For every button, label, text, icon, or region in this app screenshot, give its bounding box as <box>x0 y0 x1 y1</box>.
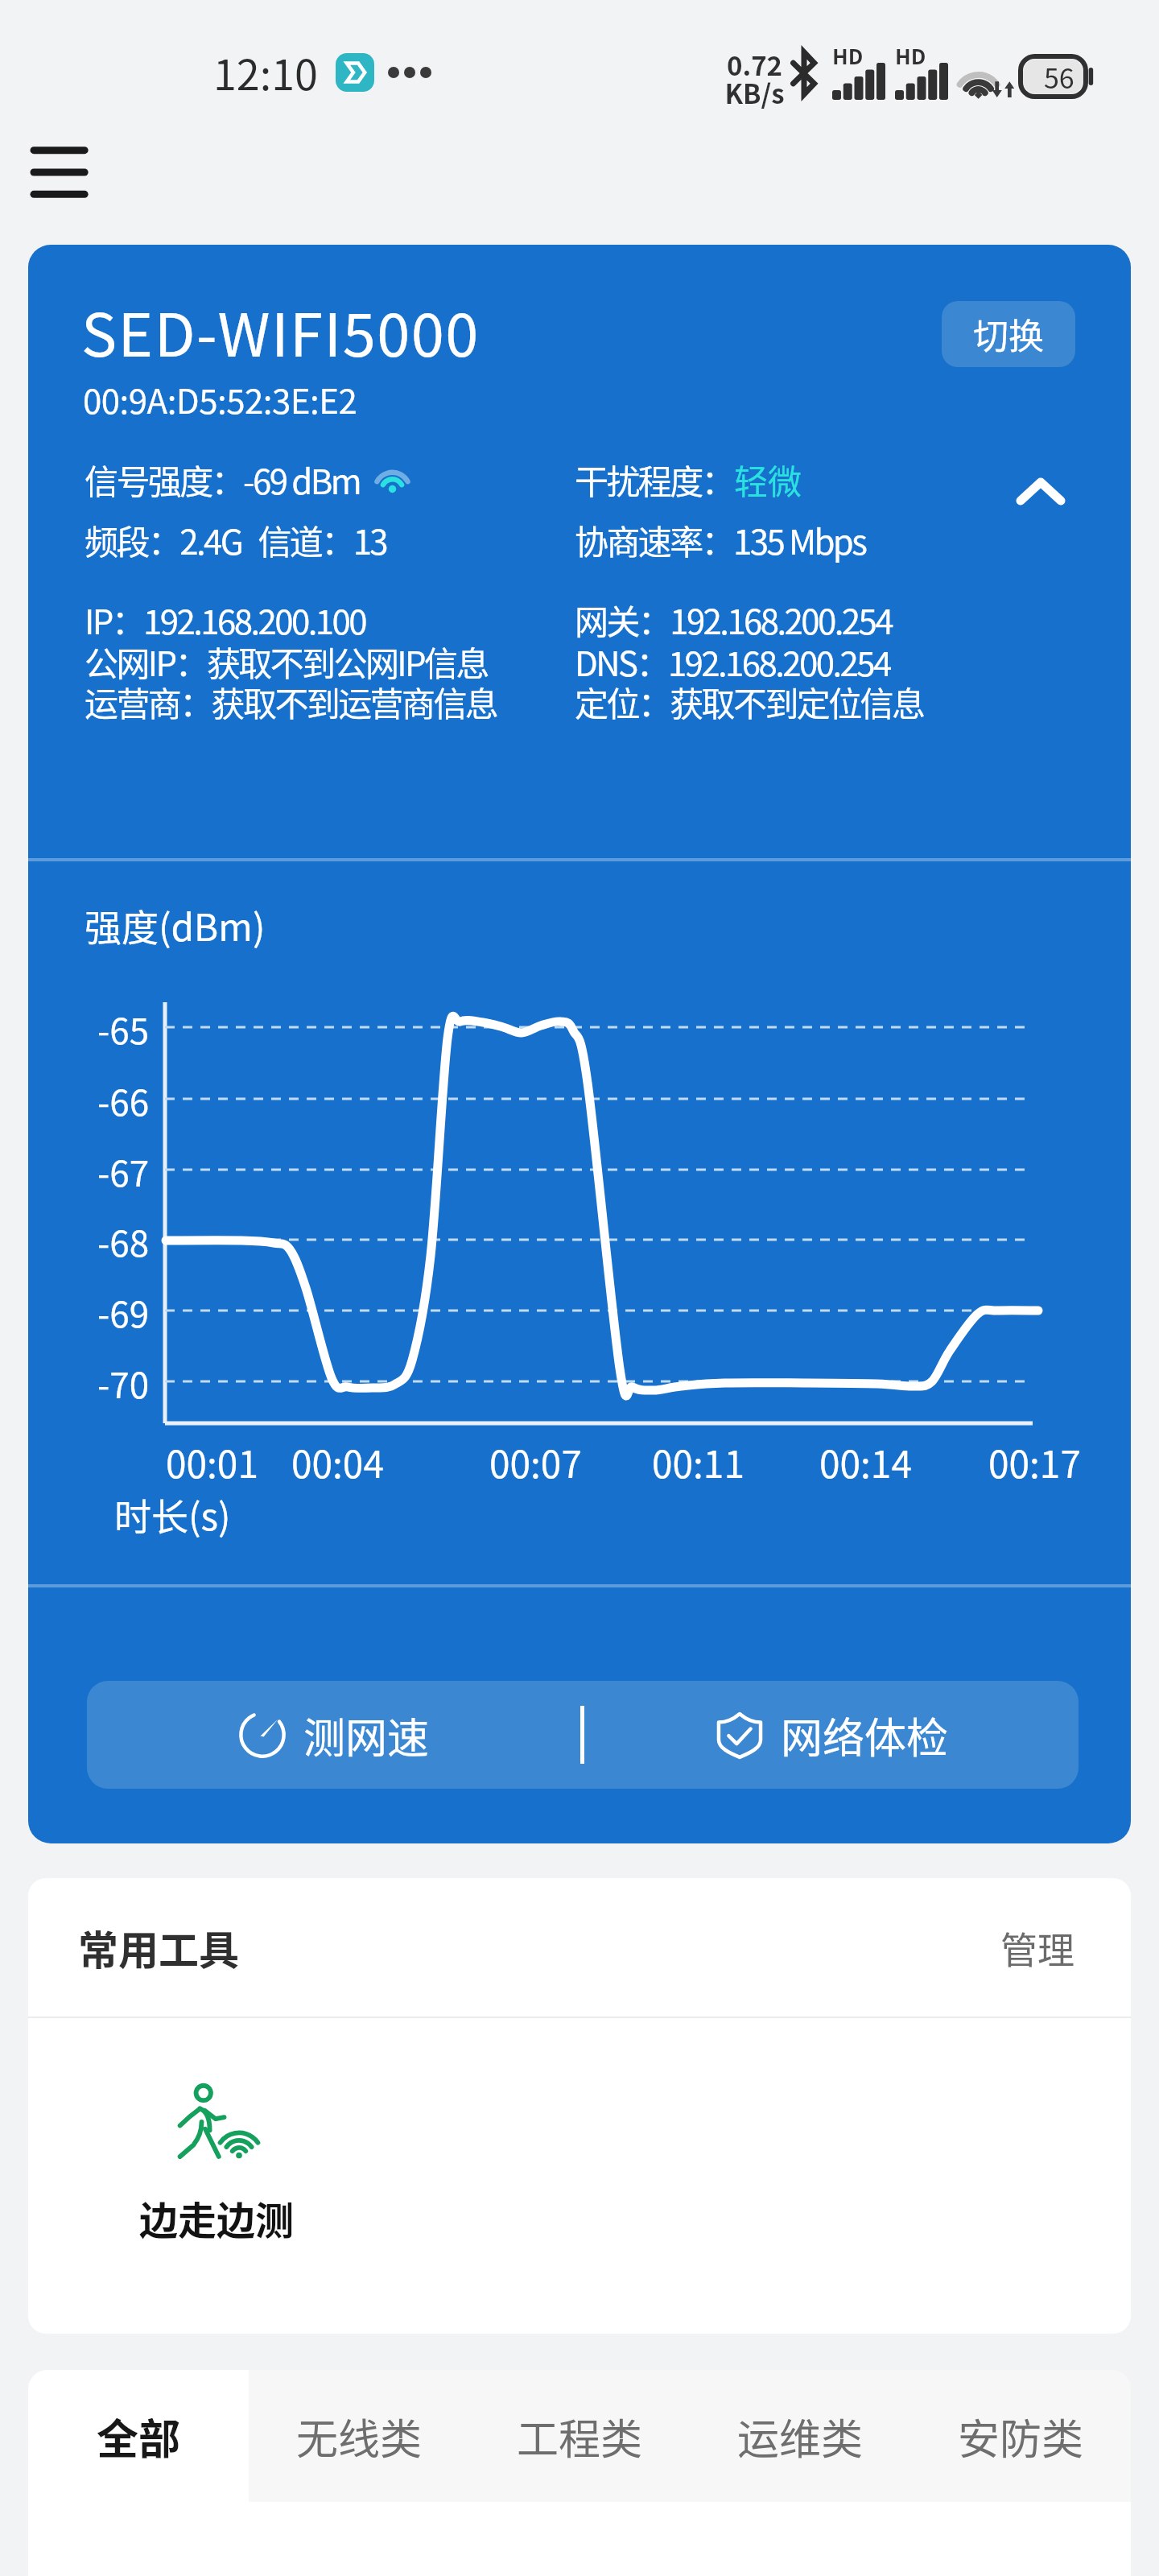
button[interactable]: 边走边测 <box>134 2075 299 2251</box>
staticText: 协商速率：135 Mbps <box>575 515 866 564</box>
staticText: HD <box>895 40 926 71</box>
button[interactable]: 安防类 <box>910 2370 1131 2502</box>
staticText: -70 <box>97 1357 150 1409</box>
staticText: 12:10 <box>213 42 318 102</box>
staticText: 00:14 <box>819 1435 912 1489</box>
button[interactable]: 管理 <box>994 1914 1081 1981</box>
staticText: -68 <box>97 1216 150 1267</box>
staticText: 切换 <box>973 308 1044 360</box>
staticText: 常用工具 <box>78 1918 239 1976</box>
staticText: 全部 <box>97 2406 181 2467</box>
button[interactable]: 无线类 <box>249 2370 469 2502</box>
staticText: 安防类 <box>958 2406 1084 2467</box>
staticText: 0.72 KB/s <box>724 45 785 112</box>
staticText: 00:11 <box>652 1435 744 1489</box>
staticText: 定位：获取不到定位信息 <box>575 677 924 726</box>
staticText: 00:04 <box>291 1435 384 1489</box>
staticText: -69 <box>97 1286 150 1338</box>
staticText: 管理 <box>1000 1921 1074 1975</box>
button[interactable]: 网络体检 <box>584 1681 1079 1789</box>
staticText: 运维类 <box>737 2406 864 2467</box>
staticText: 信号强度：-69 dBm <box>85 455 360 504</box>
staticText: 00:07 <box>489 1435 582 1489</box>
button[interactable]: 全部 <box>28 2370 249 2502</box>
staticText: -65 <box>97 1003 150 1055</box>
staticText: SED-WIFI5000 <box>81 287 480 374</box>
staticText: 时长(s) <box>114 1488 231 1542</box>
staticText: 网络体检 <box>781 1705 949 1765</box>
button[interactable]: 切换 <box>942 301 1075 367</box>
staticText: 干扰程度： <box>575 455 734 504</box>
staticText: 00:01 <box>166 1435 258 1489</box>
staticText: 00:17 <box>988 1435 1081 1489</box>
staticText: 公网IP：获取不到公网IP信息 <box>85 637 488 686</box>
staticText: 边走边测 <box>139 2190 295 2246</box>
staticText: 工程类 <box>517 2406 643 2467</box>
staticText: 00:9A:D5:52:3E:E2 <box>83 374 357 423</box>
button[interactable]: 工程类 <box>469 2370 690 2502</box>
staticText: 频段：2.4G 信道：13 <box>85 515 387 564</box>
button[interactable]: Menu <box>29 143 106 201</box>
staticText: 轻微 <box>734 455 802 504</box>
staticText: IP：192.168.200.100 <box>85 595 365 644</box>
button[interactable]: 测网速 <box>87 1681 580 1789</box>
staticText: 强度(dBm) <box>85 898 266 952</box>
staticText: 运营商：获取不到运营商信息 <box>85 677 497 726</box>
staticText: 网关：192.168.200.254 <box>575 595 892 644</box>
staticText: -67 <box>97 1146 150 1197</box>
staticText: HD <box>832 40 864 71</box>
button[interactable]: Collapse <box>1000 456 1081 521</box>
staticText: 无线类 <box>296 2406 423 2467</box>
staticText: 测网速 <box>303 1705 430 1765</box>
button[interactable]: 运维类 <box>690 2370 910 2502</box>
staticText: -66 <box>97 1075 150 1126</box>
staticText: 56 <box>1044 57 1074 97</box>
staticText: DNS：192.168.200.254 <box>575 637 890 686</box>
